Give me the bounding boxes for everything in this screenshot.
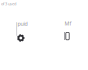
staticText: Mf — [64, 20, 71, 27]
staticText: puid — [18, 20, 28, 27]
button[interactable]: Device — [64, 19, 76, 41]
button[interactable]: Settings — [16, 19, 38, 41]
staticText: of 3 used — [1, 1, 16, 6]
